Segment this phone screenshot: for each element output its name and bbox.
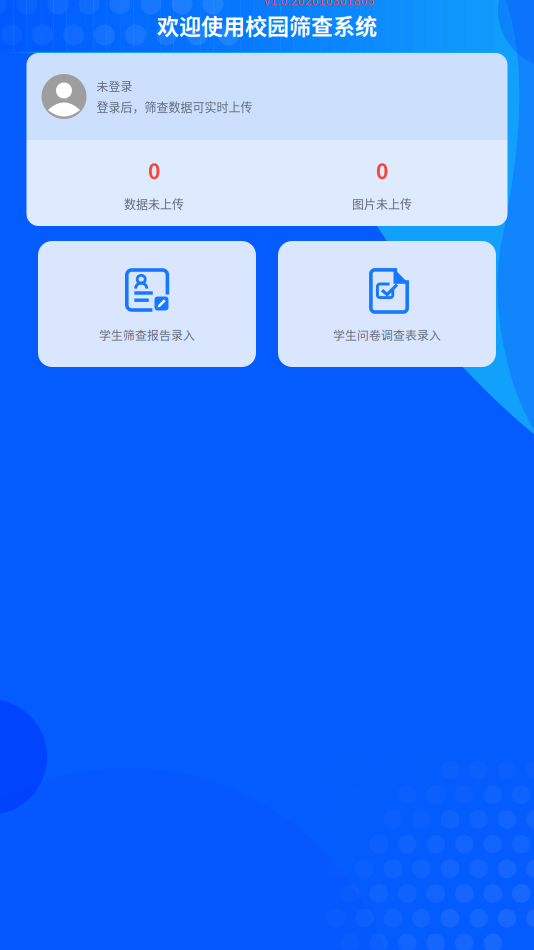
staticText: 图片未上传: [352, 195, 412, 213]
staticText: 学生筛查报告录入: [99, 326, 195, 343]
staticText: 登录后，筛查数据可实时上传: [96, 98, 252, 116]
button[interactable]: 学生问卷调查表录入: [278, 241, 496, 367]
staticText: V1.0.202010301805: [263, 0, 374, 9]
staticText: 学生问卷调查表录入: [333, 326, 441, 343]
staticText: 数据未上传: [124, 195, 184, 213]
staticText: 0: [148, 155, 160, 185]
staticText: 未登录: [96, 77, 132, 94]
staticText: 欢迎使用校园筛查系统: [157, 9, 377, 41]
button[interactable]: 学生筛查报告录入: [38, 241, 256, 367]
staticText: 0: [376, 155, 388, 185]
